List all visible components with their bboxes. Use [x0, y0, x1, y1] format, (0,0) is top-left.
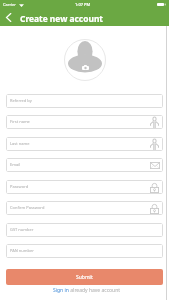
staticText: First name: [10, 119, 30, 124]
button[interactable]: Referred by: [6, 94, 163, 108]
staticText: Last name: [10, 141, 30, 146]
button[interactable]: Sign in: [53, 287, 69, 294]
button[interactable]: Last name: [6, 137, 163, 151]
staticText: Confirm Password: [10, 205, 45, 210]
staticText: Sign in: [53, 287, 69, 294]
button[interactable]: PAN number: [6, 244, 163, 258]
staticText: 1:07 PM: [75, 2, 91, 7]
button[interactable]: Submit: [6, 269, 163, 285]
staticText: Email: [10, 162, 21, 167]
button[interactable]: Password: [6, 180, 163, 194]
button[interactable]: First name: [6, 115, 163, 129]
staticText: Submit: [76, 274, 93, 281]
button[interactable]: Confirm Password: [6, 201, 163, 215]
staticText: GST number: [10, 227, 34, 232]
staticText: Referred by: [10, 98, 32, 103]
staticText: Password: [10, 184, 29, 189]
staticText: Carrier: [3, 2, 17, 7]
staticText: already have account: [69, 287, 121, 294]
button[interactable]: GST number: [6, 223, 163, 237]
staticText: PAN number: [10, 248, 34, 253]
staticText: Create new account: [20, 13, 103, 24]
button[interactable]: Back: [0, 9, 17, 26]
button[interactable]: Email: [6, 158, 163, 172]
